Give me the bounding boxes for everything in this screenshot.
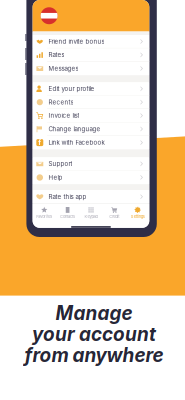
staticText: Messages <box>48 65 78 72</box>
staticText: Contacts <box>60 214 75 219</box>
button[interactable]: Edit your profile <box>33 82 149 96</box>
staticText: Favorites <box>36 214 52 219</box>
staticText: Help <box>48 174 62 181</box>
staticText: Change language <box>48 125 100 133</box>
button[interactable]: Keypad <box>79 204 103 220</box>
button[interactable]: Rates <box>33 48 149 62</box>
button[interactable]: Help <box>33 171 149 184</box>
staticText: Keypad <box>84 214 97 219</box>
button[interactable]: Rate this app <box>33 190 149 203</box>
staticText: Settings <box>131 214 145 219</box>
staticText: Invoice list <box>48 112 79 119</box>
staticText: Rates <box>48 51 64 59</box>
staticText: Support <box>48 160 72 167</box>
button[interactable]: Change language <box>33 122 149 136</box>
button[interactable]: Invoice list <box>33 109 149 122</box>
button[interactable]: Support <box>33 157 149 171</box>
button[interactable]: Profile <box>41 7 58 24</box>
button[interactable]: Credit <box>103 204 126 220</box>
button[interactable]: Messages <box>33 62 149 75</box>
staticText: Link with Facebook <box>48 139 104 146</box>
button[interactable]: f <box>33 136 149 149</box>
staticText: Credit <box>109 214 119 219</box>
staticText: Edit your profile <box>48 85 94 92</box>
button[interactable]: Recents <box>33 96 149 109</box>
button[interactable]: Favorites <box>33 204 56 220</box>
staticText: Rate this app <box>48 193 86 200</box>
staticText: Recents <box>48 98 73 106</box>
button[interactable]: Contacts <box>56 204 79 220</box>
staticText: Friend invite bonus <box>48 38 104 45</box>
staticText: Manage <box>55 301 132 324</box>
staticText: f <box>38 138 41 147</box>
button[interactable]: Friend invite bonus <box>33 35 149 48</box>
button[interactable]: Settings <box>126 204 149 220</box>
staticText: your account <box>32 322 156 345</box>
staticText: from anywhere <box>24 343 163 366</box>
